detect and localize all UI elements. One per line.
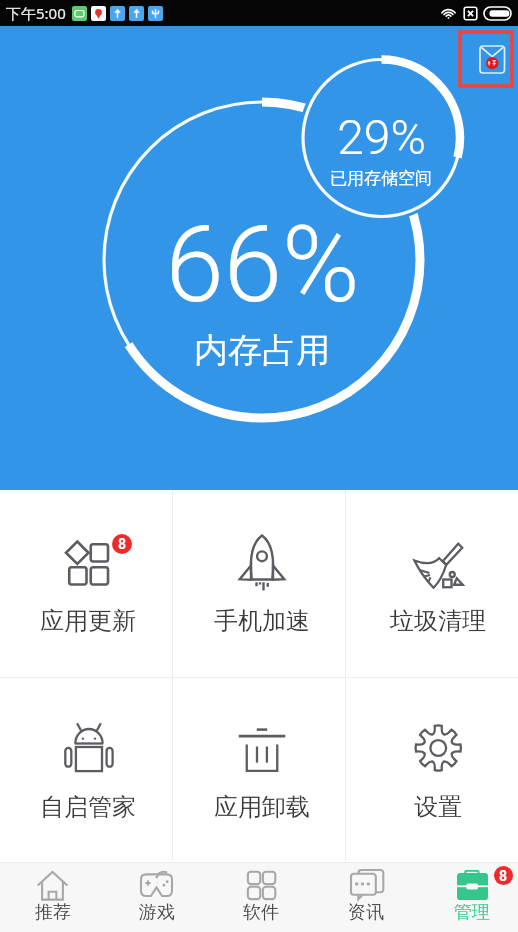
button[interactable]: 手机加速: [173, 490, 345, 677]
staticText: 手机加速: [214, 606, 310, 636]
staticText: 推荐: [35, 901, 71, 924]
button[interactable]: 资讯: [310, 863, 414, 932]
staticText: 垃圾清理: [390, 606, 486, 636]
staticText: 8: [499, 868, 508, 884]
staticText: 66%: [165, 204, 360, 327]
button[interactable]: 8: [414, 863, 518, 932]
staticText: 软件: [243, 901, 279, 924]
staticText: 应用更新: [40, 606, 136, 636]
staticText: 下午5:00: [6, 3, 66, 23]
button[interactable]: 红包: [460, 32, 512, 86]
button[interactable]: 垃圾清理: [346, 490, 518, 677]
staticText: 游戏: [139, 901, 175, 924]
staticText: 应用卸载: [214, 792, 310, 822]
staticText: 设置: [414, 792, 462, 822]
button[interactable]: 设置: [346, 678, 518, 860]
button[interactable]: 软件: [206, 863, 310, 932]
button[interactable]: 自启管家: [0, 678, 172, 860]
button[interactable]: 游戏: [103, 863, 206, 932]
staticText: 管理: [454, 901, 490, 924]
staticText: 自启管家: [40, 792, 136, 822]
staticText: 29%: [337, 109, 426, 165]
button[interactable]: 推荐: [0, 863, 103, 932]
staticText: 8: [118, 536, 127, 552]
staticText: 已用存储空间: [330, 168, 432, 189]
button[interactable]: 应用卸载: [173, 678, 345, 860]
staticText: 资讯: [348, 901, 384, 924]
button[interactable]: 8: [0, 490, 172, 677]
staticText: 内存占用: [194, 329, 330, 372]
